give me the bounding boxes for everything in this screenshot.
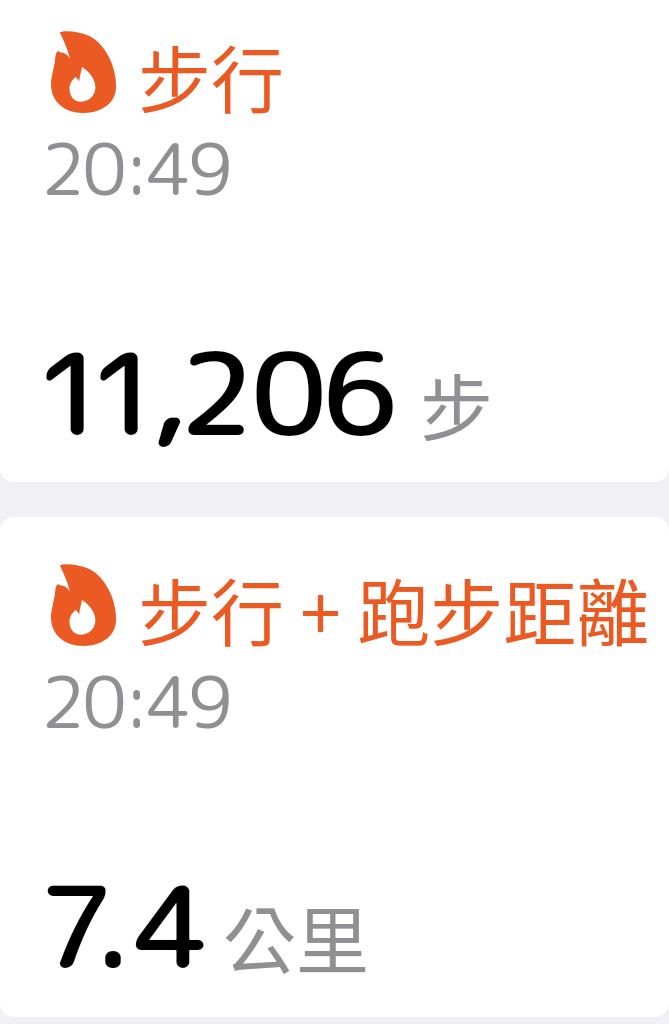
staticText: 公里 [223,883,369,989]
staticText: . [94,847,132,1005]
staticText: 6 [322,314,399,472]
button[interactable]: 步行 + 跑步距離 [0,517,669,1017]
staticText: 20:49 [41,652,230,751]
staticText: 步 [420,350,493,456]
staticText: 7 [38,847,115,1005]
staticText: 2 [178,314,255,472]
staticText: 步行 [138,22,284,128]
staticText: 1 [33,314,110,472]
staticText: 0 [251,314,328,472]
staticText: , [151,314,188,472]
staticText: 步行 + 跑步距離 [138,555,650,661]
staticText: 1 [87,314,164,472]
staticText: 20:49 [41,119,230,218]
button[interactable]: 步行 [0,0,669,482]
staticText: 4 [134,847,211,1005]
